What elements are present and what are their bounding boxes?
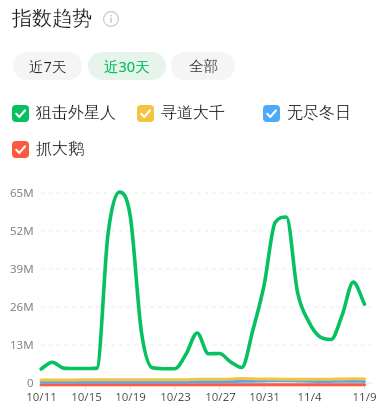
button[interactable]: 无尽冬日 bbox=[263, 103, 351, 123]
button[interactable]: 寻道大千 bbox=[137, 103, 225, 123]
staticText: 近7天 bbox=[29, 56, 67, 76]
staticText: 10/11 bbox=[26, 389, 57, 405]
staticText: 52M bbox=[10, 223, 34, 239]
staticText: 0 bbox=[27, 375, 34, 391]
staticText: 无尽冬日 bbox=[287, 103, 351, 123]
button[interactable]: Info bbox=[102, 10, 119, 27]
staticText: 抓大鹅 bbox=[36, 139, 84, 159]
staticText: 近30天 bbox=[104, 56, 150, 76]
button[interactable]: 近30天 bbox=[88, 52, 166, 80]
staticText: 13M bbox=[10, 337, 34, 353]
button[interactable]: 全部 bbox=[171, 52, 235, 80]
staticText: 10/15 bbox=[71, 389, 102, 405]
staticText: 寻道大千 bbox=[161, 103, 225, 123]
staticText: 39M bbox=[10, 261, 34, 277]
staticText: 65M bbox=[10, 185, 34, 201]
staticText: 11/9 bbox=[352, 389, 377, 405]
staticText: 全部 bbox=[189, 57, 218, 75]
button[interactable]: 抓大鹅 bbox=[12, 139, 84, 159]
staticText: 10/19 bbox=[115, 389, 146, 405]
staticText: 26M bbox=[10, 299, 34, 315]
button[interactable]: 近7天 bbox=[13, 52, 82, 80]
staticText: 10/27 bbox=[205, 389, 236, 405]
staticText: 指数趋势 bbox=[12, 6, 92, 31]
staticText: 11/4 bbox=[297, 389, 322, 405]
staticText: 10/23 bbox=[160, 389, 191, 405]
button[interactable]: 狙击外星人 bbox=[12, 103, 116, 123]
staticText: 10/31 bbox=[249, 389, 280, 405]
staticText: 狙击外星人 bbox=[36, 103, 116, 123]
